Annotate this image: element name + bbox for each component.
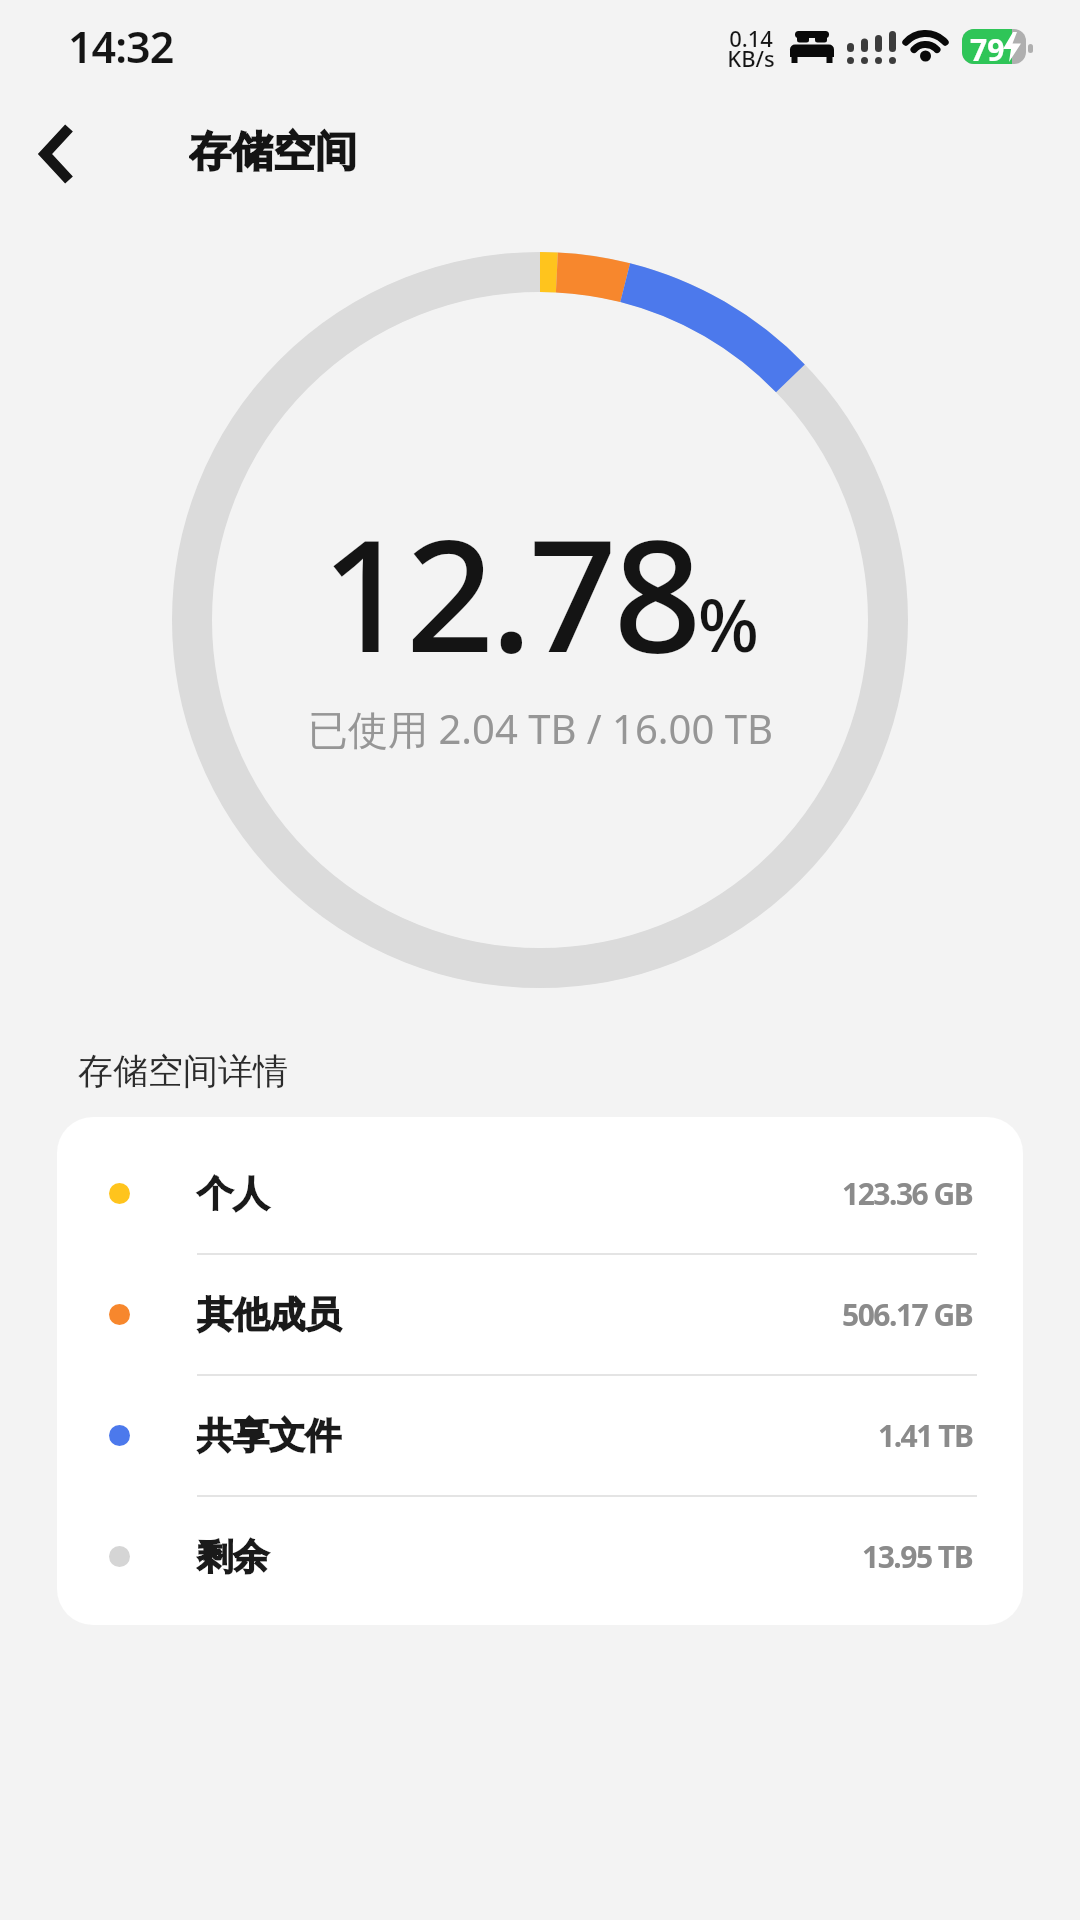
staticText: 存储空间 (189, 126, 357, 178)
button[interactable]: 个人 (57, 1134, 1023, 1253)
staticText: 0.14 KB/s (727, 23, 775, 74)
button[interactable]: 共享文件 (57, 1376, 1023, 1495)
staticText: 共享文件 (197, 1413, 341, 1458)
staticText: 506.17 GB (842, 1294, 973, 1335)
staticText: 其他成员 (197, 1292, 341, 1337)
staticText: 个人 (197, 1171, 269, 1216)
staticText: 123.36 GB (842, 1173, 973, 1214)
staticText: 12.78% (321, 486, 760, 697)
staticText: 14:32 (68, 17, 174, 76)
button[interactable] (22, 118, 92, 190)
staticText: 13.95 TB (862, 1536, 973, 1577)
button[interactable]: 剩余 (57, 1497, 1023, 1616)
staticText: 1.41 TB (878, 1415, 973, 1456)
staticText: 已使用 2.04 TB / 16.00 TB (308, 701, 773, 756)
staticText: 存储空间详情 (78, 1049, 288, 1093)
staticText: 79 (970, 29, 1005, 64)
staticText: 剩余 (197, 1534, 269, 1579)
button[interactable]: 其他成员 (57, 1255, 1023, 1374)
